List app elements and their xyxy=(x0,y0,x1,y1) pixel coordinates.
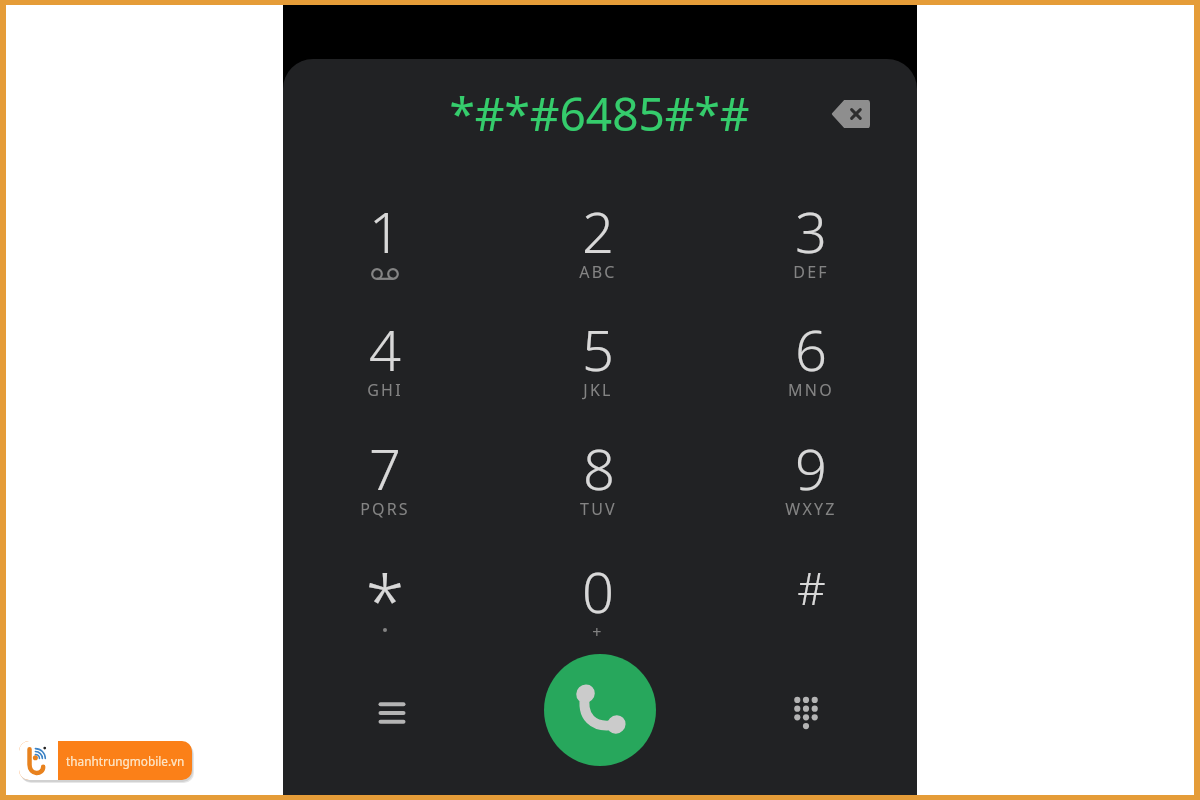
button[interactable]: 0 xyxy=(540,553,656,663)
staticText: *#*#6485#*# xyxy=(449,82,750,145)
staticText: 8 xyxy=(583,430,615,506)
button[interactable]: 8 xyxy=(540,430,656,540)
button[interactable]: Backspace xyxy=(826,94,876,134)
staticText: 6 xyxy=(795,311,827,387)
staticText: 4 xyxy=(369,311,401,387)
staticText: PQRS xyxy=(360,498,410,520)
button[interactable]: 2 xyxy=(540,193,656,303)
button[interactable]: * xyxy=(327,553,443,663)
staticText: * xyxy=(365,552,405,649)
staticText: + xyxy=(592,621,604,643)
button[interactable]: Menu xyxy=(366,687,418,739)
button[interactable]: 5 xyxy=(540,311,656,421)
staticText: thanhtrungmobile.vn xyxy=(66,753,185,769)
staticText: 1 xyxy=(369,193,401,269)
staticText: JKL xyxy=(583,379,613,401)
button[interactable]: # xyxy=(753,553,869,663)
button[interactable]: 6 xyxy=(753,311,869,421)
staticText: # xyxy=(797,558,826,618)
button[interactable]: *#*#6485#*# xyxy=(283,75,917,151)
staticText: TUV xyxy=(580,498,617,520)
button[interactable]: Call xyxy=(544,654,656,766)
staticText: 9 xyxy=(795,430,827,506)
button[interactable]: 3 xyxy=(753,193,869,303)
staticText: GHI xyxy=(367,379,403,401)
staticText: 0 xyxy=(582,553,614,629)
button[interactable]: 7 xyxy=(327,430,443,540)
staticText: WXYZ xyxy=(785,498,837,520)
button[interactable]: thanhtrungmobile.vn xyxy=(19,741,192,780)
button[interactable]: Dialpad xyxy=(780,687,832,739)
staticText: ABC xyxy=(579,261,617,283)
staticText: 7 xyxy=(369,430,401,506)
button[interactable]: 1 xyxy=(327,193,443,303)
staticText: 3 xyxy=(795,193,827,269)
staticText: 5 xyxy=(582,311,614,387)
button[interactable]: 4 xyxy=(327,311,443,421)
staticText: DEF xyxy=(793,261,829,283)
staticText: MNO xyxy=(788,379,834,401)
button[interactable]: 9 xyxy=(753,430,869,540)
staticText: 2 xyxy=(582,193,614,269)
